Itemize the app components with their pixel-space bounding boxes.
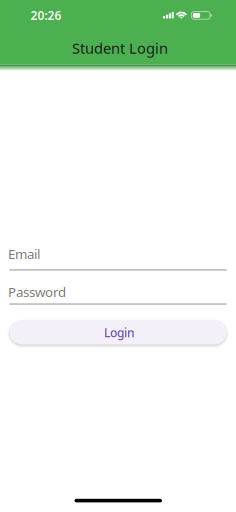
button[interactable]: Email [8,245,226,270]
staticText: Email [8,245,40,263]
staticText: 20:26 [30,7,61,23]
staticText: Login [104,324,135,340]
button[interactable]: Login [9,320,226,344]
staticText: Password [8,283,66,301]
button[interactable]: Password [8,283,226,305]
staticText: Student Login [72,38,168,58]
